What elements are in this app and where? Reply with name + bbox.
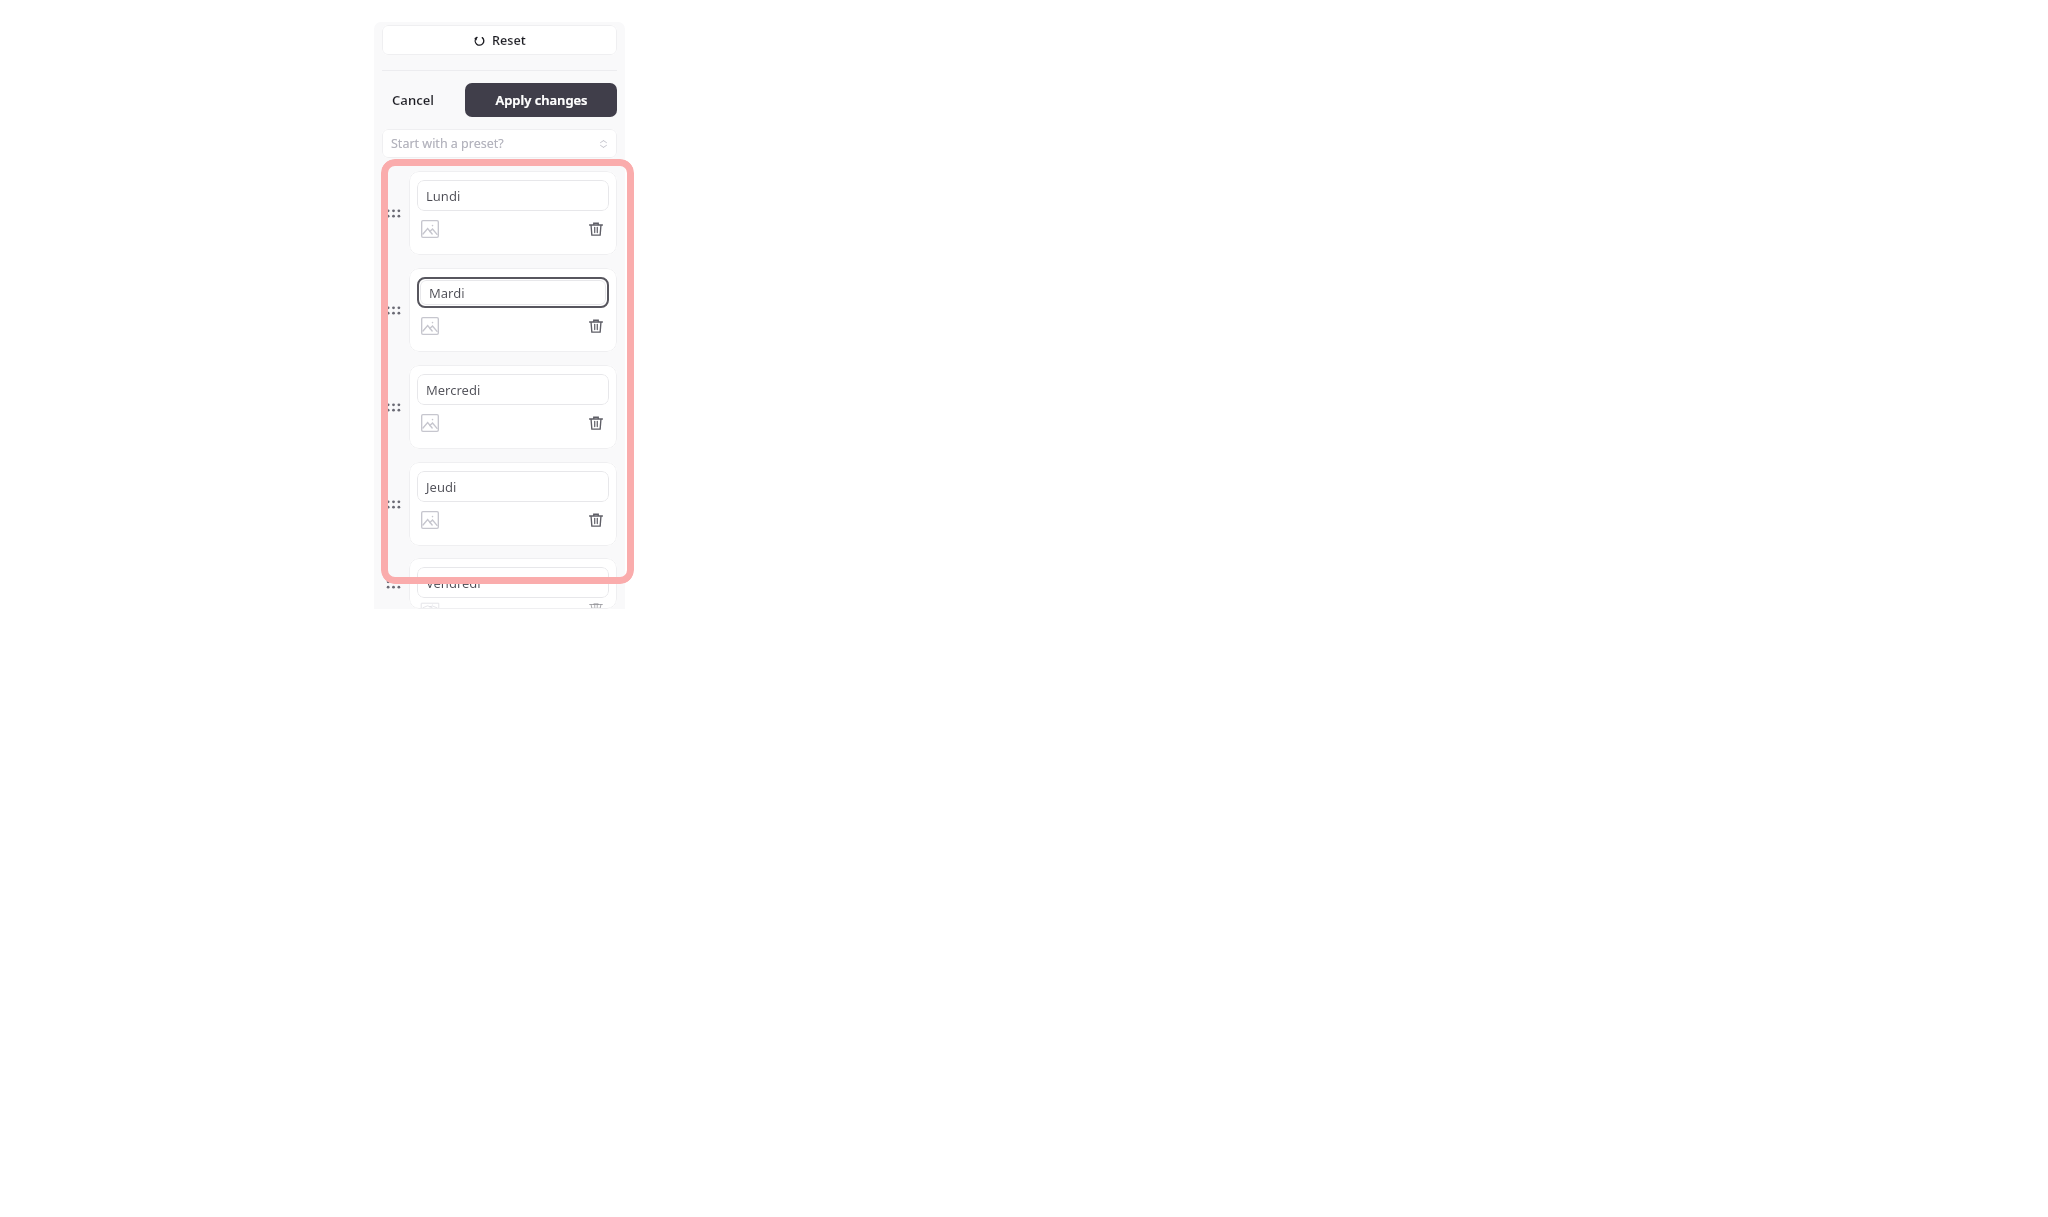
button[interactable]: Reorder Vendredi (382, 573, 404, 595)
staticText: Cancel (392, 91, 435, 109)
staticText: Mardi (429, 284, 465, 302)
staticText: Reset (492, 32, 526, 49)
button[interactable]: Lundi (417, 180, 609, 211)
button[interactable]: Delete Mercredi (583, 410, 609, 436)
button[interactable]: Delete Mardi (583, 313, 609, 339)
button[interactable]: Cancel (382, 83, 445, 117)
button[interactable]: Reorder Lundi (382, 202, 404, 224)
button[interactable]: Add image for Lundi (417, 216, 443, 242)
staticText: Jeudi (426, 478, 457, 496)
staticText: Mercredi (426, 381, 481, 399)
button[interactable]: Reorder Mercredi (382, 396, 404, 418)
button[interactable]: Mardi (420, 280, 606, 305)
button[interactable]: Add image for Jeudi (417, 507, 443, 533)
button[interactable]: Apply changes (465, 83, 617, 117)
button[interactable]: Jeudi (417, 471, 609, 502)
staticText: Vendredi (426, 574, 481, 592)
button[interactable]: Add image for Vendredi (417, 603, 443, 609)
button[interactable]: Vendredi (417, 567, 609, 598)
staticText: Start with a preset? (391, 135, 599, 152)
staticText: Apply changes (495, 91, 588, 109)
button[interactable]: Delete Vendredi (583, 603, 609, 609)
button[interactable]: Add image for Mardi (417, 313, 443, 339)
button[interactable]: Reset (382, 25, 617, 55)
button[interactable]: Mercredi (417, 374, 609, 405)
button[interactable]: Add image for Mercredi (417, 410, 443, 436)
button[interactable]: Delete Lundi (583, 216, 609, 242)
button[interactable]: Delete Jeudi (583, 507, 609, 533)
button[interactable]: Reorder Mardi (382, 299, 404, 321)
button[interactable]: Start with a preset? (382, 129, 617, 158)
button[interactable]: Reorder Jeudi (382, 493, 404, 515)
staticText: Lundi (426, 187, 461, 205)
